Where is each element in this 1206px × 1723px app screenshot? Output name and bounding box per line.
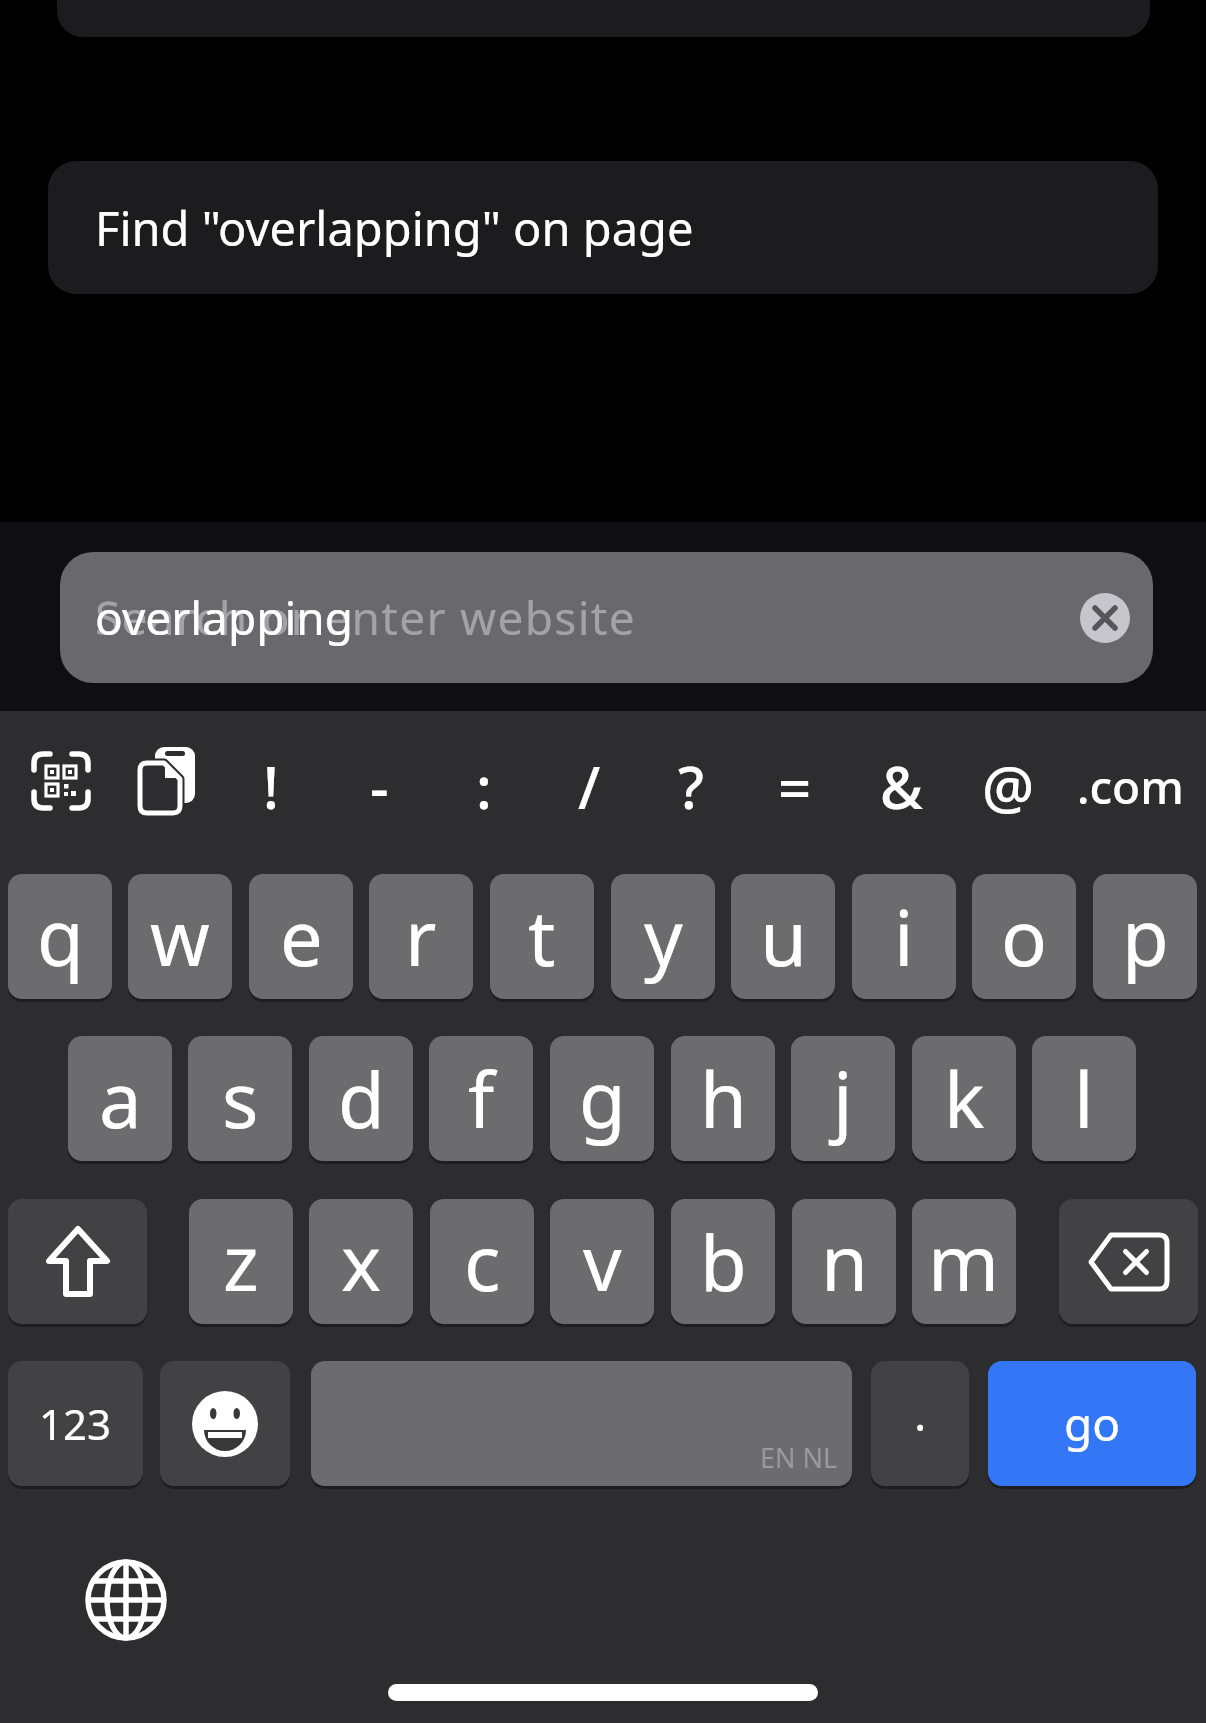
- button[interactable]: [1059, 1199, 1198, 1324]
- staticText: r: [405, 885, 437, 989]
- button[interactable]: c: [430, 1199, 534, 1324]
- staticText: d: [338, 1047, 385, 1151]
- button[interactable]: w: [128, 874, 232, 999]
- staticText: Find "overlapping" on page: [95, 196, 694, 260]
- staticText: @: [982, 747, 1035, 826]
- button[interactable]: i: [852, 874, 956, 999]
- staticText: w: [150, 885, 210, 989]
- staticText: go: [1064, 1392, 1121, 1455]
- button[interactable]: -: [331, 738, 427, 834]
- staticText: j: [833, 1047, 853, 1151]
- staticText: ?: [678, 747, 704, 826]
- button[interactable]: d: [309, 1036, 413, 1161]
- staticText: EN NL: [760, 1439, 838, 1476]
- staticText: q: [37, 885, 84, 989]
- button[interactable]: l: [1032, 1036, 1136, 1161]
- staticText: o: [1001, 885, 1047, 989]
- staticText: n: [821, 1210, 868, 1314]
- staticText: x: [341, 1210, 382, 1314]
- button[interactable]: s: [188, 1036, 292, 1161]
- button[interactable]: j: [791, 1036, 895, 1161]
- button[interactable]: m: [912, 1199, 1016, 1324]
- staticText: m: [928, 1210, 1000, 1314]
- button[interactable]: [84, 1558, 168, 1642]
- button[interactable]: f: [429, 1036, 533, 1161]
- staticText: t: [528, 885, 556, 989]
- button[interactable]: v: [550, 1199, 654, 1324]
- staticText: .: [914, 1382, 927, 1445]
- button[interactable]: k: [912, 1036, 1016, 1161]
- button[interactable]: t: [490, 874, 594, 999]
- staticText: g: [579, 1047, 626, 1151]
- button[interactable]: q: [8, 874, 112, 999]
- staticText: f: [468, 1047, 495, 1151]
- button[interactable]: n: [792, 1199, 896, 1324]
- staticText: =: [778, 747, 812, 826]
- button[interactable]: z: [189, 1199, 293, 1324]
- staticText: s: [222, 1047, 259, 1151]
- staticText: /: [578, 747, 601, 826]
- button[interactable]: u: [731, 874, 835, 999]
- staticText: overlapping: [95, 586, 354, 649]
- staticText: v: [583, 1210, 622, 1314]
- staticText: !: [263, 747, 279, 826]
- button[interactable]: @: [960, 738, 1056, 834]
- button[interactable]: Find "overlapping" on page: [48, 161, 1158, 294]
- button[interactable]: [8, 1199, 147, 1324]
- button[interactable]: 123: [8, 1361, 143, 1486]
- button[interactable]: y: [611, 874, 715, 999]
- button[interactable]: EN NL: [311, 1361, 852, 1486]
- button[interactable]: x: [309, 1199, 413, 1324]
- button[interactable]: [139, 747, 195, 815]
- staticText: z: [223, 1210, 259, 1314]
- button[interactable]: [31, 751, 91, 811]
- button[interactable]: o: [972, 874, 1076, 999]
- staticText: &: [880, 747, 923, 826]
- button[interactable]: :: [436, 738, 532, 834]
- button[interactable]: p: [1093, 874, 1197, 999]
- staticText: l: [1074, 1047, 1094, 1151]
- button[interactable]: =: [747, 738, 843, 834]
- button[interactable]: e: [249, 874, 353, 999]
- staticText: :: [476, 747, 492, 826]
- button[interactable]: [160, 1361, 290, 1486]
- staticText: c: [464, 1210, 501, 1314]
- button[interactable]: g: [550, 1036, 654, 1161]
- button[interactable]: .com: [1068, 741, 1192, 831]
- button[interactable]: b: [671, 1199, 775, 1324]
- staticText: -: [370, 747, 389, 826]
- staticText: b: [700, 1210, 747, 1314]
- button[interactable]: r: [369, 874, 473, 999]
- button[interactable]: &: [853, 738, 949, 834]
- button[interactable]: go: [988, 1361, 1196, 1486]
- staticText: i: [894, 885, 914, 989]
- button[interactable]: a: [68, 1036, 172, 1161]
- staticText: 123: [39, 1395, 112, 1452]
- staticText: Search or enter website: [95, 586, 636, 649]
- button[interactable]: ?: [643, 738, 739, 834]
- button[interactable]: .: [871, 1361, 969, 1486]
- staticText: p: [1122, 885, 1169, 989]
- button[interactable]: [1080, 593, 1130, 643]
- staticText: a: [99, 1047, 142, 1151]
- staticText: k: [944, 1047, 985, 1151]
- staticText: y: [644, 885, 683, 989]
- button[interactable]: !: [223, 738, 319, 834]
- staticText: e: [280, 885, 323, 989]
- staticText: .com: [1077, 755, 1184, 818]
- button[interactable]: /: [541, 738, 637, 834]
- button[interactable]: h: [671, 1036, 775, 1161]
- button[interactable]: Search or enter website: [60, 552, 1153, 683]
- staticText: h: [700, 1047, 747, 1151]
- staticText: u: [760, 885, 807, 989]
